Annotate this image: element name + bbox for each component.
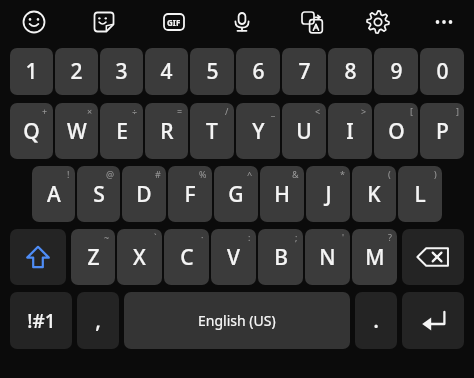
staticText: + xyxy=(42,105,48,117)
staticText: · xyxy=(201,231,204,243)
button[interactable]: R xyxy=(145,103,188,159)
button[interactable]: GIF xyxy=(152,0,196,44)
staticText: 5 xyxy=(206,57,219,86)
button[interactable]: P xyxy=(420,103,464,159)
staticText: 0 xyxy=(436,57,449,86)
staticText: % xyxy=(199,168,207,180)
button[interactable]: Shift xyxy=(10,229,66,285)
staticText: 9 xyxy=(390,57,403,86)
button[interactable]: J xyxy=(306,166,350,222)
staticText: # xyxy=(155,168,161,180)
staticText: W xyxy=(67,117,87,146)
staticText: N xyxy=(319,243,336,272)
button[interactable]: C xyxy=(164,229,209,285)
button[interactable]: B xyxy=(258,229,303,285)
button[interactable]: Voice input xyxy=(220,0,264,44)
staticText: 4 xyxy=(160,57,173,86)
button[interactable]: Q xyxy=(10,103,53,159)
button[interactable]: E xyxy=(100,103,143,159)
button[interactable]: !#1 xyxy=(10,292,72,349)
staticText: , xyxy=(95,306,101,335)
staticText: U xyxy=(296,117,312,146)
button[interactable]: A xyxy=(32,166,75,222)
button[interactable]: D xyxy=(122,166,166,222)
staticText: M xyxy=(365,243,385,272)
staticText: I xyxy=(346,117,354,146)
button[interactable]: Backspace xyxy=(402,229,464,285)
button[interactable]: Enter xyxy=(402,292,464,349)
staticText: = xyxy=(177,105,183,117)
button[interactable]: 1 xyxy=(10,48,53,95)
button[interactable]: Stickers xyxy=(82,0,126,44)
button[interactable]: 4 xyxy=(145,48,188,95)
staticText: !#1 xyxy=(27,308,56,334)
staticText: D xyxy=(136,180,152,209)
button[interactable]: Translate xyxy=(290,0,334,44)
button[interactable]: English (US) xyxy=(124,292,350,349)
staticText: F xyxy=(184,180,196,209)
button[interactable]: T xyxy=(190,103,234,159)
button[interactable]: 0 xyxy=(420,48,464,95)
button[interactable]: 5 xyxy=(190,48,234,95)
staticText: S xyxy=(93,180,105,209)
button[interactable]: F xyxy=(168,166,212,222)
staticText: A xyxy=(47,180,61,209)
staticText: @ xyxy=(106,168,115,180)
staticText: E xyxy=(116,117,128,146)
button[interactable]: X xyxy=(117,229,162,285)
staticText: 7 xyxy=(298,57,311,86)
staticText: R xyxy=(160,117,174,146)
staticText: 1 xyxy=(25,57,38,86)
button[interactable]: U xyxy=(282,103,326,159)
button[interactable]: . xyxy=(355,292,397,349)
button[interactable]: More options xyxy=(425,0,462,44)
staticText: ' xyxy=(342,231,345,243)
staticText: ( xyxy=(388,168,391,180)
staticText: < xyxy=(315,105,321,117)
staticText: H xyxy=(274,180,290,209)
button[interactable]: , xyxy=(77,292,119,349)
button[interactable]: S xyxy=(77,166,120,222)
staticText: O xyxy=(388,117,405,146)
button[interactable]: Settings xyxy=(356,0,400,44)
staticText: / xyxy=(225,105,229,117)
staticText: J xyxy=(325,180,332,209)
staticText: K xyxy=(367,180,381,209)
staticText: × xyxy=(87,105,93,117)
staticText: ) xyxy=(434,168,437,180)
button[interactable]: 6 xyxy=(236,48,280,95)
button[interactable]: L xyxy=(398,166,442,222)
button[interactable]: 7 xyxy=(282,48,326,95)
button[interactable]: M xyxy=(352,229,397,285)
button[interactable]: V xyxy=(211,229,256,285)
button[interactable]: H xyxy=(260,166,304,222)
button[interactable]: Y xyxy=(236,103,280,159)
staticText: ` xyxy=(154,231,157,243)
button[interactable]: Emoji xyxy=(12,0,56,44)
button[interactable]: 8 xyxy=(328,48,372,95)
staticText: _ xyxy=(271,105,275,117)
button[interactable]: G xyxy=(214,166,258,222)
button[interactable]: 2 xyxy=(55,48,98,95)
staticText: ; xyxy=(295,231,298,243)
staticText: 8 xyxy=(344,57,357,86)
staticText: Q xyxy=(23,117,40,146)
staticText: G xyxy=(228,180,244,209)
staticText: ~ xyxy=(104,231,110,243)
button[interactable]: K xyxy=(352,166,396,222)
button[interactable]: N xyxy=(305,229,350,285)
button[interactable]: 3 xyxy=(100,48,143,95)
staticText: L xyxy=(414,180,426,209)
staticText: X xyxy=(133,243,146,272)
staticText: ! xyxy=(67,168,70,180)
button[interactable]: O xyxy=(374,103,418,159)
button[interactable]: W xyxy=(55,103,98,159)
staticText: 2 xyxy=(70,57,83,86)
button[interactable]: I xyxy=(328,103,372,159)
staticText: ] xyxy=(456,105,459,117)
staticText: V xyxy=(227,243,240,272)
staticText: ? xyxy=(388,231,392,243)
button[interactable]: 9 xyxy=(374,48,418,95)
staticText: [ xyxy=(410,105,413,117)
button[interactable]: Z xyxy=(71,229,115,285)
